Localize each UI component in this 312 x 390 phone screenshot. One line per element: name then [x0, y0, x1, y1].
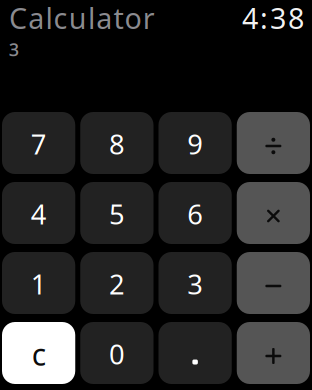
button[interactable]: Multiply — [237, 182, 310, 244]
staticText: 5 — [109, 195, 125, 233]
staticText: 8 — [109, 125, 125, 163]
staticText: 0 — [109, 335, 125, 373]
button[interactable]: 7 — [2, 112, 75, 174]
button[interactable]: 6 — [158, 182, 232, 244]
button[interactable]: 8 — [80, 112, 153, 174]
staticText: 4 — [31, 195, 47, 233]
button[interactable]: Minus — [237, 252, 310, 314]
button[interactable]: Divide — [237, 112, 310, 174]
staticText: Calculator³ — [9, 0, 166, 37]
staticText: 4:38 — [242, 0, 304, 37]
staticText: 7 — [31, 125, 47, 163]
staticText: 9 — [187, 125, 203, 163]
staticText: 3 — [187, 265, 203, 303]
staticText: 1 — [31, 265, 47, 303]
button[interactable]: 5 — [80, 182, 153, 244]
button[interactable]: c — [2, 322, 75, 384]
button[interactable]: 4 — [2, 182, 75, 244]
button[interactable]: 9 — [158, 112, 232, 174]
button[interactable]: 1 — [2, 252, 75, 314]
button[interactable]: 2 — [80, 252, 153, 314]
button[interactable]: 3 — [158, 252, 232, 314]
button[interactable]: 0 — [80, 322, 153, 384]
staticText: 2 — [109, 265, 125, 303]
staticText: c — [32, 334, 46, 374]
button[interactable]: Decimal point — [158, 322, 232, 384]
staticText: 6 — [187, 195, 203, 233]
button[interactable]: Plus — [237, 322, 310, 384]
